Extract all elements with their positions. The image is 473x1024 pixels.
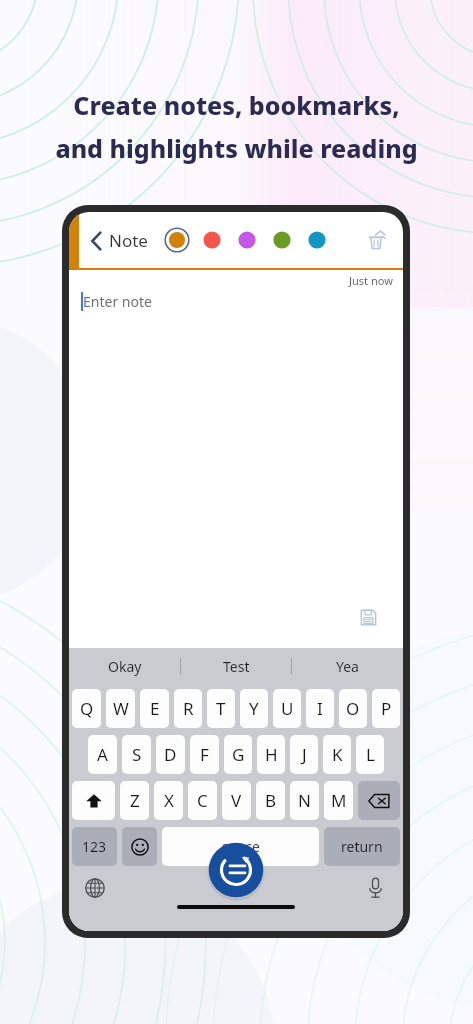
button[interactable]: S: [122, 735, 151, 774]
button[interactable]: F: [190, 735, 219, 774]
button[interactable]: Okay: [69, 648, 181, 684]
staticText: 123: [82, 837, 107, 856]
button[interactable]: V: [222, 781, 251, 820]
staticText: Y: [249, 697, 259, 720]
button[interactable]: return: [324, 827, 400, 866]
button[interactable]: G: [224, 735, 252, 774]
button[interactable]: C: [188, 781, 217, 820]
button[interactable]: K: [323, 735, 351, 774]
staticText: R: [183, 697, 194, 720]
staticText: J: [302, 743, 307, 766]
staticText: N: [298, 789, 311, 812]
staticText: V: [231, 789, 242, 812]
staticText: S: [132, 743, 142, 766]
button[interactable]: U: [273, 689, 301, 728]
button[interactable]: T: [207, 689, 235, 728]
button[interactable]: A: [88, 735, 117, 774]
staticText: K: [332, 743, 343, 766]
staticText: Create notes, bookmarks,: [73, 88, 400, 122]
button[interactable]: Colour 2: [199, 227, 225, 253]
button[interactable]: Test: [181, 648, 292, 684]
button[interactable]: Shift: [72, 781, 115, 820]
staticText: C: [197, 789, 208, 812]
button[interactable]: Colour 1: [164, 227, 190, 253]
button[interactable]: M: [324, 781, 353, 820]
staticText: M: [331, 789, 347, 812]
button[interactable]: 123: [72, 827, 117, 866]
button[interactable]: Yea: [292, 648, 403, 684]
staticText: Q: [80, 697, 94, 720]
staticText: and highlights while reading: [55, 131, 418, 165]
button[interactable]: Save note: [355, 604, 381, 630]
staticText: space: [222, 837, 260, 856]
button[interactable]: D: [156, 735, 185, 774]
button[interactable]: Y: [240, 689, 268, 728]
button[interactable]: J: [290, 735, 318, 774]
staticText: E: [150, 697, 160, 720]
button[interactable]: X: [154, 781, 183, 820]
staticText: Z: [130, 789, 140, 812]
button[interactable]: space: [162, 827, 319, 866]
button[interactable]: Emoji: [122, 827, 157, 866]
staticText: U: [281, 697, 294, 720]
button[interactable]: Colour 5: [304, 227, 330, 253]
staticText: L: [366, 743, 375, 766]
button[interactable]: E: [140, 689, 169, 728]
button[interactable]: I: [306, 689, 334, 728]
button[interactable]: O: [339, 689, 367, 728]
button[interactable]: H: [257, 735, 285, 774]
staticText: D: [164, 743, 177, 766]
button[interactable]: Colour 4: [269, 227, 295, 253]
button[interactable]: N: [290, 781, 319, 820]
button[interactable]: Z: [120, 781, 149, 820]
button[interactable]: Delete note: [361, 225, 391, 255]
staticText: F: [200, 743, 209, 766]
staticText: W: [113, 697, 129, 720]
button[interactable]: Voice input: [361, 873, 389, 901]
button[interactable]: W: [106, 689, 135, 728]
staticText: P: [381, 697, 392, 720]
staticText: Note: [109, 229, 148, 252]
staticText: T: [216, 697, 226, 720]
staticText: O: [346, 697, 360, 720]
button[interactable]: P: [372, 689, 400, 728]
staticText: Just now: [349, 273, 393, 288]
staticText: Enter note: [83, 292, 152, 311]
staticText: return: [341, 837, 383, 856]
staticText: H: [265, 743, 278, 766]
button[interactable]: L: [356, 735, 384, 774]
staticText: Okay: [108, 657, 142, 676]
staticText: B: [265, 789, 277, 812]
staticText: I: [317, 697, 323, 720]
button[interactable]: Q: [72, 689, 101, 728]
staticText: G: [232, 743, 245, 766]
button[interactable]: Backspace: [358, 781, 400, 820]
button[interactable]: B: [256, 781, 285, 820]
button[interactable]: Enter note: [81, 292, 152, 311]
button[interactable]: R: [174, 689, 202, 728]
staticText: X: [164, 789, 174, 812]
staticText: Test: [223, 657, 250, 676]
button[interactable]: App logo: [207, 841, 265, 899]
staticText: A: [97, 743, 108, 766]
button[interactable]: Change keyboard language: [81, 874, 109, 902]
button[interactable]: Colour 3: [234, 227, 260, 253]
button[interactable]: Note: [87, 223, 152, 258]
staticText: Yea: [336, 657, 359, 676]
